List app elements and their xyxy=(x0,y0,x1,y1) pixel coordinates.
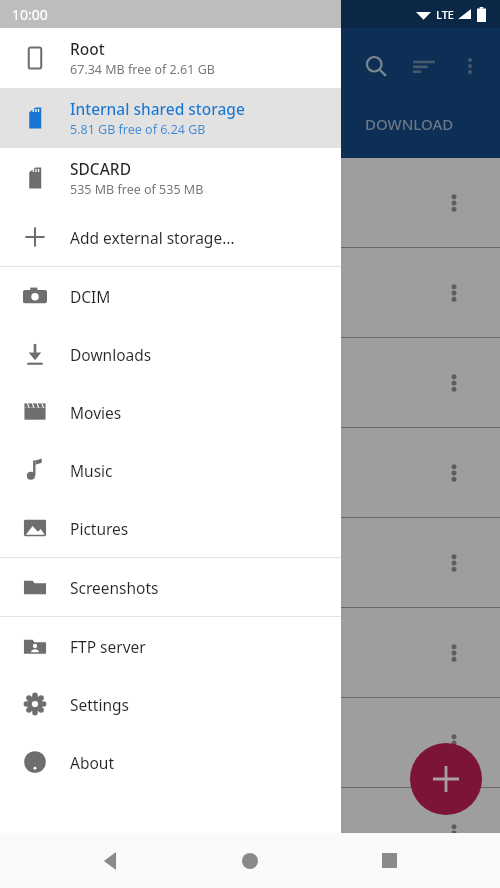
button[interactable]: Movies xyxy=(0,383,341,441)
button[interactable]: Settings xyxy=(0,675,341,733)
button[interactable]: Item options xyxy=(434,543,474,583)
staticText: FTP server xyxy=(70,636,146,657)
button[interactable]: Item options xyxy=(434,183,474,223)
staticText: 67.34 MB free of 2.61 GB xyxy=(70,61,215,78)
button[interactable]: Music xyxy=(0,441,341,499)
staticText: Music xyxy=(70,460,113,481)
button[interactable]: Internal shared storage xyxy=(0,88,341,148)
staticText: 5.81 GB free of 6.24 GB xyxy=(70,121,206,138)
button[interactable]: Item options xyxy=(0,518,500,608)
staticText: Root xyxy=(70,38,105,59)
button[interactable]: DCIM xyxy=(0,267,341,325)
staticText: Internal shared storage xyxy=(70,98,245,119)
button[interactable]: Downloads xyxy=(0,325,341,383)
button[interactable]: Item options xyxy=(434,723,474,763)
button[interactable]: Item options xyxy=(0,158,500,248)
staticText: Pictures xyxy=(70,518,129,539)
button[interactable]: Item options xyxy=(434,453,474,493)
button[interactable]: Item options xyxy=(434,633,474,673)
staticText: DCIM xyxy=(70,286,111,307)
button[interactable]: Item options xyxy=(0,338,500,428)
button[interactable]: Item options xyxy=(0,608,500,698)
staticText: Add external storage… xyxy=(70,227,235,248)
staticText: LTE xyxy=(436,7,454,22)
button[interactable]: Sort xyxy=(400,42,448,90)
staticText: 10:00 xyxy=(12,5,48,24)
button[interactable]: Root xyxy=(0,28,341,88)
staticText: Downloads xyxy=(70,344,152,365)
button[interactable]: Add external storage… xyxy=(0,208,341,266)
button[interactable]: Search xyxy=(352,42,400,90)
button[interactable]: Add xyxy=(410,743,482,815)
button[interactable]: Screenshots xyxy=(0,558,341,616)
button[interactable]: Item options xyxy=(434,363,474,403)
button[interactable]: Back xyxy=(83,833,139,888)
staticText: Screenshots xyxy=(70,577,159,598)
button[interactable]: FTP server xyxy=(0,617,341,675)
button[interactable]: Item options xyxy=(434,273,474,313)
button[interactable]: Home xyxy=(222,833,278,888)
staticText: Movies xyxy=(70,402,122,423)
staticText: Settings xyxy=(70,694,129,715)
button[interactable]: Item options xyxy=(0,248,500,338)
button[interactable]: Item options xyxy=(0,698,500,788)
button[interactable]: Item options xyxy=(434,813,474,853)
staticText: 535 MB free of 535 MB xyxy=(70,181,204,198)
button[interactable]: Recents xyxy=(361,833,417,888)
staticText: SDCARD xyxy=(70,158,131,179)
button[interactable]: SDCARD xyxy=(0,148,341,208)
button[interactable]: Item options xyxy=(0,428,500,518)
button[interactable]: About xyxy=(0,733,341,791)
button[interactable]: More options xyxy=(448,44,492,88)
button[interactable]: Pictures xyxy=(0,499,341,557)
staticText: About xyxy=(70,752,114,773)
button[interactable]: Item options xyxy=(0,788,500,878)
button[interactable]: DOWNLOAD xyxy=(365,114,454,134)
